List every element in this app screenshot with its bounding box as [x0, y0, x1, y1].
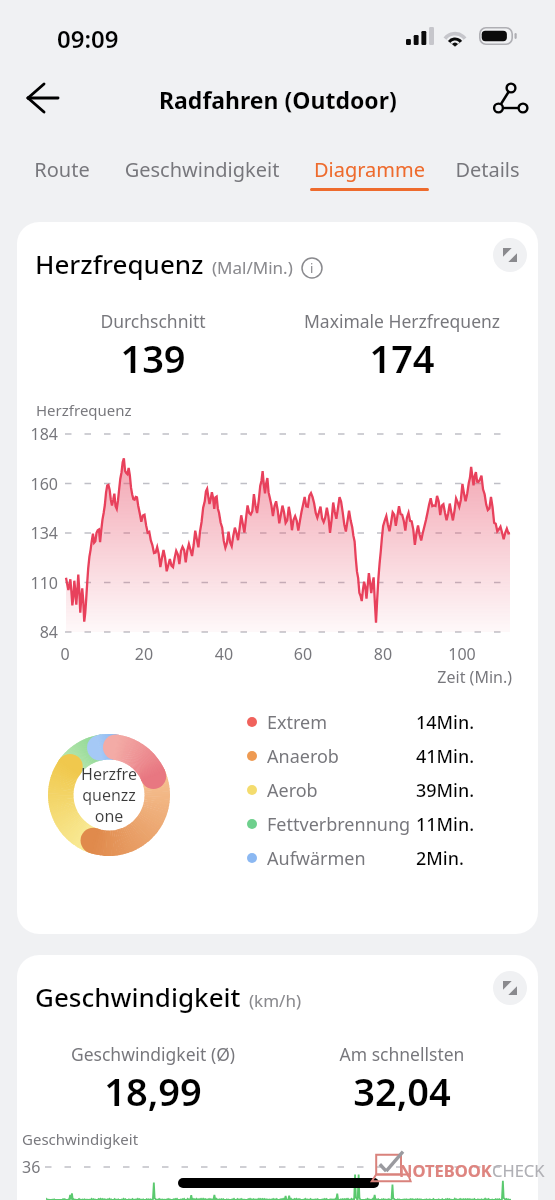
staticText: Fettverbrennung [267, 812, 416, 837]
staticText: 32,04 [282, 1065, 522, 1117]
staticText: Aerob [267, 778, 416, 803]
staticText: Details [452, 156, 523, 183]
button[interactable]: Aerob [247, 773, 475, 807]
staticText: 40 [199, 643, 249, 665]
staticText: Geschwindigkeit [35, 979, 241, 1014]
staticText: 18,99 [33, 1065, 273, 1117]
staticText: 11Min. [416, 812, 475, 837]
button[interactable]: Vollbild [493, 238, 527, 272]
staticText: Zeit (Min.) [412, 666, 512, 688]
staticText: 174 [282, 332, 522, 384]
staticText: Herzfre quenzz one [69, 763, 149, 827]
staticText: 36 [22, 1156, 41, 1178]
staticText: 14Min. [416, 710, 475, 735]
staticText: (Mal/Min.) [212, 256, 293, 279]
staticText: 160 [17, 473, 58, 495]
staticText: 60 [278, 643, 328, 665]
staticText: Maximale Herzfrequenz [282, 309, 522, 333]
staticText: 0 [40, 643, 90, 665]
staticText: Geschwindigkeit (Ø) [33, 1042, 273, 1066]
button[interactable]: Teilen [483, 70, 539, 126]
staticText: Aufwärmen [267, 846, 416, 871]
staticText: Geschwindigkeit [116, 156, 288, 183]
staticText: Diagramme [310, 156, 429, 183]
button[interactable]: Vollbild [493, 971, 527, 1005]
staticText: 139 [33, 332, 273, 384]
button[interactable]: Geschwindigkeit [116, 156, 288, 188]
staticText: Durchschnitt [33, 309, 273, 333]
staticText: i [310, 259, 314, 277]
staticText: 184 [17, 423, 58, 445]
staticText: Herzfrequenz [36, 400, 132, 420]
button[interactable]: Aufwärmen [247, 841, 464, 875]
staticText: Geschwindigkeit [22, 1129, 139, 1149]
button[interactable]: Info [301, 257, 323, 279]
staticText: (km/h) [249, 989, 302, 1012]
button[interactable]: Details [452, 156, 523, 188]
button[interactable]: Zurück [15, 70, 71, 126]
staticText: NOTEBOOK [399, 1159, 492, 1181]
staticText: Extrem [267, 710, 416, 735]
staticText: 09:09 [57, 22, 119, 55]
staticText: 110 [17, 572, 58, 594]
staticText: Radfahren (Outdoor) [159, 84, 397, 115]
staticText: 20 [119, 643, 169, 665]
button[interactable]: Diagramme [310, 156, 429, 191]
staticText: 100 [437, 643, 487, 665]
staticText: 84 [17, 621, 58, 643]
button[interactable]: Route [30, 156, 94, 188]
staticText: CHECK [492, 1159, 545, 1181]
staticText: 41Min. [416, 744, 475, 769]
staticText: Route [30, 156, 94, 183]
button[interactable]: Fettverbrennung [247, 807, 475, 841]
staticText: 39Min. [416, 778, 475, 803]
button[interactable]: Anaerob [247, 739, 475, 773]
staticText: Am schnellsten [282, 1042, 522, 1066]
staticText: Anaerob [267, 744, 416, 769]
staticText: 2Min. [416, 846, 464, 871]
staticText: 134 [17, 522, 58, 544]
button[interactable]: Extrem [247, 705, 475, 739]
staticText: Herzfrequenz [35, 246, 204, 281]
staticText: 80 [358, 643, 408, 665]
